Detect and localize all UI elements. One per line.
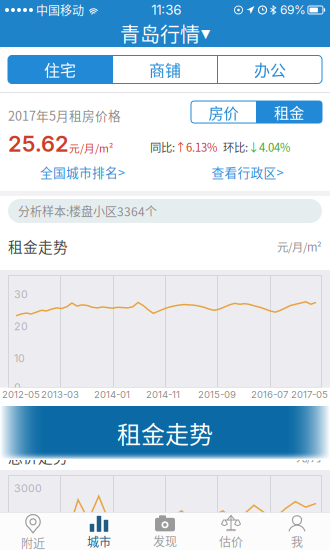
button[interactable]: 房价 — [191, 101, 256, 123]
button[interactable]: 全国城市排名> — [0, 159, 165, 185]
staticText: 估价 — [219, 533, 243, 550]
staticText: 2016-07 — [251, 389, 288, 400]
staticText: 租金 — [274, 101, 304, 123]
staticText: 租金走势 — [117, 416, 213, 450]
staticText: 租房 — [28, 409, 52, 427]
staticText: 同比: — [150, 139, 175, 155]
staticText: 11:36 — [151, 2, 181, 18]
button[interactable]: 查看行政区> — [165, 159, 330, 185]
button[interactable]: 办公 — [218, 55, 322, 83]
button[interactable]: 青岛行情 — [0, 20, 330, 47]
staticText: 分析样本:楼盘小区3364个 — [18, 202, 157, 220]
staticText: 2013-03 — [41, 389, 79, 400]
button[interactable]: 租金 — [256, 101, 322, 123]
staticText: 0 — [14, 381, 21, 394]
staticText: 青岛行情 — [120, 19, 200, 48]
staticText: 2017-05 — [291, 389, 328, 400]
staticText: 租金走势 — [8, 236, 68, 257]
button[interactable]: 商铺 — [113, 55, 217, 83]
staticText: 25.62 — [8, 130, 69, 157]
staticText: 10 — [14, 352, 25, 365]
staticText: 总价走势 — [8, 446, 68, 467]
staticText: 3000 — [14, 482, 42, 495]
staticText: 环比: — [217, 139, 248, 155]
staticText: ↑6.13% — [175, 139, 217, 155]
staticText: 附近 — [21, 534, 45, 550]
staticText: 住宅 — [44, 58, 76, 81]
staticText: 2017年5月租房价格 — [8, 106, 121, 124]
staticText: 元/月/m² — [277, 238, 322, 255]
button[interactable]: 发现 — [132, 513, 198, 550]
button[interactable]: 附近 — [0, 513, 66, 550]
button[interactable]: 住宅 — [8, 55, 112, 83]
staticText: 全国城市排名> — [40, 163, 125, 181]
staticText: 2014-11 — [146, 389, 180, 400]
button[interactable]: 估价 — [198, 513, 264, 550]
staticText: 办公 — [254, 58, 286, 81]
button[interactable]: 城市 — [66, 513, 132, 550]
staticText: 中国移动 — [36, 1, 84, 19]
staticText: 城市 — [87, 533, 111, 550]
staticText: 2014-01 — [94, 389, 130, 400]
staticText: ▼ — [201, 26, 210, 40]
staticText: ↓4.04% — [248, 139, 290, 155]
staticText: 30 — [14, 288, 28, 301]
staticText: 2015-09 — [198, 389, 236, 400]
staticText: 元/月 — [296, 448, 322, 465]
staticText: 69% — [280, 3, 306, 17]
staticText: 2012-05 — [2, 389, 40, 400]
staticText: 查看行政区> — [211, 163, 283, 181]
button[interactable]: 我 — [264, 513, 330, 550]
staticText: 房价 — [208, 101, 238, 123]
staticText: 我 — [291, 533, 303, 550]
staticText: 20 — [14, 320, 28, 333]
staticText: 元/月/m² — [69, 140, 113, 155]
staticText: 发现 — [153, 532, 177, 550]
staticText: 商铺 — [149, 58, 181, 81]
